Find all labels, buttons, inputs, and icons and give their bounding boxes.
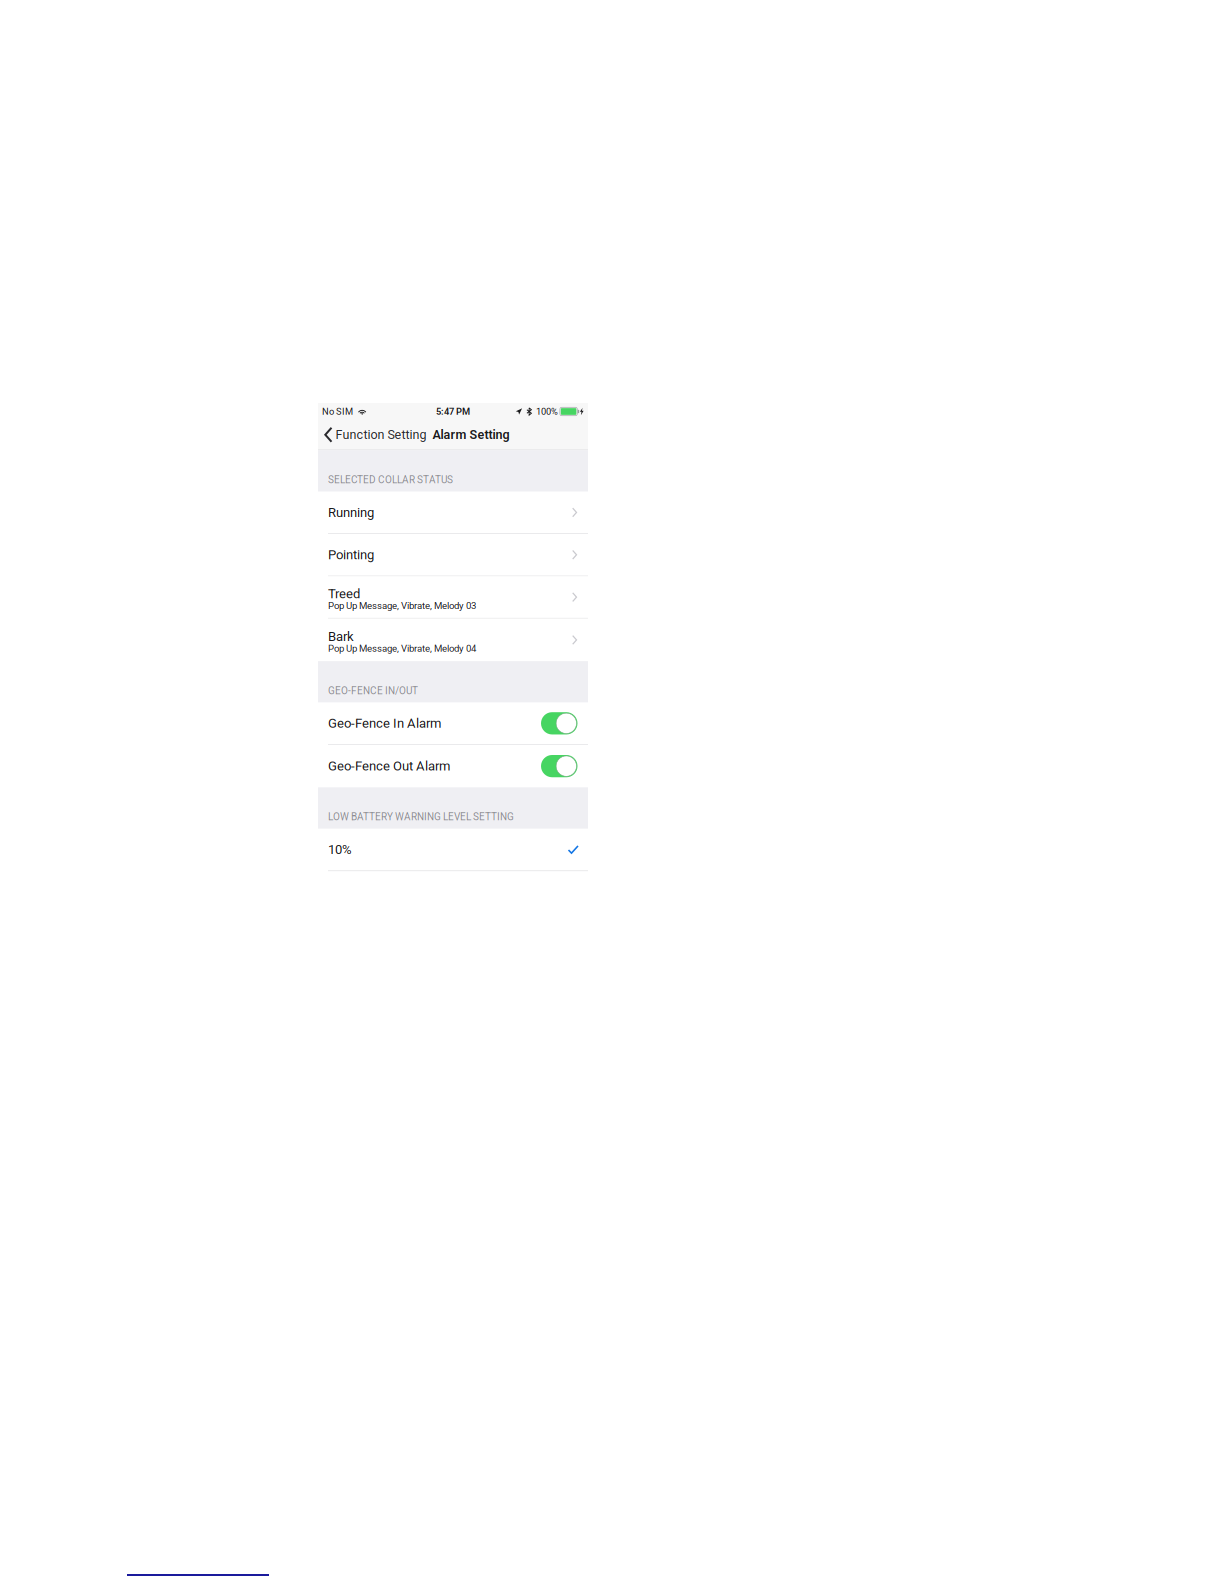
staticText: GEO-FENCE IN/OUT — [328, 685, 418, 697]
button[interactable]: Geo-Fence Out Alarm — [318, 745, 588, 787]
staticText: Alarm Setting — [433, 427, 510, 442]
staticText: LOW BATTERY WARNING LEVEL SETTING — [328, 811, 514, 823]
staticText: Pop Up Message, Vibrate, Melody 03 — [328, 600, 476, 611]
staticText: 5:47 PM — [436, 406, 470, 417]
staticText: 100% — [536, 406, 558, 417]
staticText: 10% — [328, 842, 352, 857]
button[interactable]: Bark — [318, 619, 588, 661]
staticText: Bark — [328, 629, 354, 644]
staticText: SELECTED COLLAR STATUS — [328, 474, 453, 486]
button[interactable]: Treed — [318, 576, 588, 619]
button[interactable]: Running — [318, 492, 588, 534]
button[interactable]: Pointing — [318, 534, 588, 576]
staticText: Running — [328, 505, 374, 520]
button[interactable]: 10% — [318, 829, 588, 871]
staticText: Pop Up Message, Vibrate, Melody 04 — [328, 643, 476, 654]
staticText: No SIM — [322, 406, 353, 417]
staticText: Geo-Fence In Alarm — [328, 716, 441, 731]
staticText: Geo-Fence Out Alarm — [328, 758, 450, 774]
staticText: Treed — [328, 586, 360, 601]
staticText: Function Setting — [336, 427, 427, 442]
staticText: Pointing — [328, 547, 374, 562]
button[interactable]: Function Setting — [318, 420, 429, 449]
button[interactable]: Geo-Fence In Alarm — [318, 703, 588, 745]
